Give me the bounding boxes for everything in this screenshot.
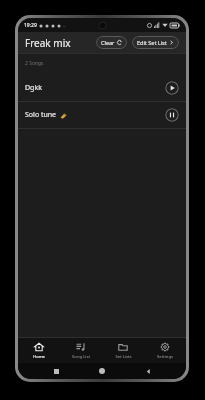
staticText: Freak mix <box>25 36 71 50</box>
staticText: 19:29 <box>24 22 37 29</box>
staticText: -- <box>63 23 66 28</box>
staticText: 2 Songs <box>25 60 44 67</box>
button[interactable]: Clear <box>96 36 127 49</box>
button[interactable]: Recent apps <box>48 363 64 379</box>
staticText: Clear <box>101 39 115 46</box>
button[interactable]: Home <box>94 363 110 379</box>
staticText: Dgkk <box>25 83 42 93</box>
staticText: Home <box>33 354 45 360</box>
button[interactable]: Pause <box>165 108 179 122</box>
staticText: Edit Set List <box>137 39 167 46</box>
button[interactable]: Back <box>140 363 156 379</box>
button[interactable]: Play <box>165 81 179 95</box>
staticText: Settings <box>157 354 173 360</box>
button[interactable]: Song List <box>60 338 102 363</box>
button[interactable]: Edit Set List <box>132 36 179 49</box>
button[interactable]: Set Lists <box>102 338 144 363</box>
button[interactable]: Dgkk <box>18 75 186 101</box>
staticText: Solo tune <box>25 110 57 120</box>
button[interactable]: Solo tune <box>18 102 186 128</box>
staticText: Set Lists <box>115 354 132 360</box>
button[interactable]: Settings <box>144 338 186 363</box>
button[interactable]: Home <box>18 338 60 363</box>
staticText: Song List <box>72 354 90 360</box>
